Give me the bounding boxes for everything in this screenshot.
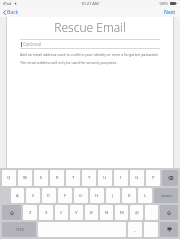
button[interactable]: J xyxy=(106,188,120,203)
staticText: Next xyxy=(164,9,176,15)
button[interactable]: P xyxy=(146,170,160,186)
button[interactable]: O xyxy=(130,170,144,186)
staticText: E xyxy=(40,175,43,181)
staticText: C xyxy=(60,210,63,216)
button[interactable]: Y xyxy=(82,170,96,186)
button[interactable]: Shift xyxy=(160,205,178,220)
button[interactable]: Hide keyboard xyxy=(160,222,178,237)
button[interactable]: U xyxy=(98,170,112,186)
button[interactable]: D xyxy=(42,188,56,203)
staticText: The email address will only be used for … xyxy=(20,60,118,65)
button[interactable]: . xyxy=(145,205,158,220)
staticText: Y xyxy=(88,175,91,181)
button[interactable]: R xyxy=(50,170,64,186)
button[interactable]: C xyxy=(55,205,68,220)
staticText: . xyxy=(151,210,153,216)
button[interactable]: H xyxy=(90,188,104,203)
staticText: P xyxy=(152,175,155,181)
button[interactable]: Optional xyxy=(20,40,160,48)
staticText: Optional xyxy=(23,41,42,47)
staticText: N xyxy=(105,210,109,216)
button[interactable]: G xyxy=(74,188,88,203)
button[interactable]: Delete xyxy=(162,170,178,186)
staticText: Z xyxy=(29,210,32,216)
button[interactable]: .?123 xyxy=(2,222,36,237)
button[interactable]: return xyxy=(154,188,178,203)
staticText: Add an email address used to confirm you… xyxy=(20,52,159,57)
button[interactable]: Shift xyxy=(2,205,21,220)
staticText: M xyxy=(120,210,124,216)
button[interactable]: L xyxy=(138,188,152,203)
button[interactable]: Next xyxy=(160,7,180,17)
button[interactable]: . xyxy=(144,222,158,237)
staticText: D xyxy=(47,193,51,199)
button[interactable]: X xyxy=(39,205,53,220)
staticText: T xyxy=(72,175,75,181)
staticText: iPad xyxy=(3,1,12,6)
button[interactable]: A xyxy=(11,188,24,203)
staticText: return xyxy=(161,193,172,198)
button[interactable]: F xyxy=(58,188,72,203)
button[interactable]: N xyxy=(100,205,113,220)
staticText: X xyxy=(45,210,48,216)
staticText: B xyxy=(90,210,93,216)
button[interactable]: B xyxy=(85,205,98,220)
button[interactable]: V xyxy=(70,205,83,220)
staticText: I xyxy=(120,175,122,181)
staticText: H xyxy=(95,193,99,199)
staticText: @ xyxy=(135,210,139,216)
button[interactable]: W xyxy=(18,170,32,186)
staticText: L xyxy=(144,193,147,199)
staticText: 10:21 AM xyxy=(81,1,99,6)
staticText: U xyxy=(103,175,107,181)
staticText: Back xyxy=(7,9,19,15)
button[interactable]: M xyxy=(115,205,128,220)
staticText: G xyxy=(79,193,83,199)
button[interactable]: I xyxy=(114,170,128,186)
button[interactable]: Back xyxy=(0,7,22,17)
button[interactable]: Z xyxy=(23,205,37,220)
button[interactable]: E xyxy=(34,170,48,186)
staticText: W xyxy=(23,175,27,181)
button[interactable]: S xyxy=(26,188,40,203)
staticText: O xyxy=(135,175,139,181)
staticText: A xyxy=(16,193,19,199)
staticText: S xyxy=(32,193,35,199)
staticText: J xyxy=(112,193,114,199)
button[interactable]: K xyxy=(122,188,136,203)
staticText: Rescue Email xyxy=(6,19,174,35)
button[interactable]: Q xyxy=(2,170,16,186)
button[interactable]: @ xyxy=(130,205,143,220)
staticText: .?123 xyxy=(15,227,24,232)
button[interactable]: _ xyxy=(128,222,142,237)
button[interactable]: T xyxy=(66,170,80,186)
staticText: K xyxy=(128,193,131,199)
staticText: V xyxy=(75,210,78,216)
staticText: R xyxy=(56,175,59,181)
staticText: Q xyxy=(7,175,11,181)
staticText: _ xyxy=(134,227,136,233)
staticText: . xyxy=(150,227,152,233)
staticText: F xyxy=(64,193,67,199)
staticText: 100% xyxy=(159,1,168,6)
